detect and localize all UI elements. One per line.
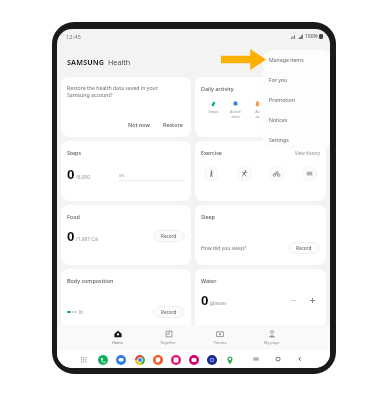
button[interactable]: Daily activity <box>195 77 326 137</box>
staticText: Water <box>201 277 217 284</box>
button[interactable]: Cycling <box>269 166 284 181</box>
staticText: View history <box>295 150 320 156</box>
staticText: Exercise <box>201 149 222 156</box>
staticText: Settings <box>269 136 289 143</box>
button[interactable]: Steps <box>61 141 191 201</box>
staticText: Active time <box>227 109 244 119</box>
button[interactable]: Messages <box>116 355 126 365</box>
button[interactable]: Notices <box>263 109 330 129</box>
button[interactable]: Chrome <box>134 354 145 365</box>
button[interactable]: Increase water <box>307 295 318 306</box>
button[interactable]: Phone <box>98 355 108 365</box>
button[interactable]: Back <box>296 355 304 363</box>
button[interactable]: Together <box>143 325 194 350</box>
staticText: glasses <box>210 300 227 307</box>
button[interactable]: Body composition <box>61 269 191 329</box>
staticText: Sleep <box>201 213 215 220</box>
button[interactable]: More exercises <box>302 166 317 181</box>
button[interactable]: Gallery <box>171 355 181 365</box>
button[interactable]: View history <box>295 150 320 156</box>
button[interactable]: Record <box>153 230 185 242</box>
staticText: Ac ca <box>249 109 266 119</box>
button[interactable]: Fitness <box>194 325 246 350</box>
button[interactable]: Apps <box>78 354 88 364</box>
staticText: 12:45 <box>66 33 81 41</box>
staticText: lb <box>79 309 84 315</box>
button[interactable]: Manage items <box>263 50 330 69</box>
button[interactable]: Sleep <box>195 205 326 265</box>
button[interactable]: Notes <box>153 355 163 365</box>
staticText: Manage items <box>269 56 304 63</box>
staticText: 100% <box>305 33 318 40</box>
staticText: How did you sleep? <box>201 245 247 252</box>
staticText: Restore <box>163 121 183 128</box>
staticText: 0% <box>119 173 125 178</box>
button[interactable]: Settings <box>263 129 330 149</box>
button[interactable]: Recents <box>252 355 260 363</box>
staticText: Promotion <box>269 96 295 103</box>
staticText: Notices <box>269 116 288 123</box>
staticText: Fitness <box>214 340 227 345</box>
staticText: Home <box>112 340 123 345</box>
button[interactable]: My page <box>246 325 298 350</box>
button[interactable]: Decrease water <box>288 295 299 306</box>
button[interactable]: Camera <box>189 355 199 365</box>
button[interactable]: Not now <box>126 120 152 129</box>
staticText: My page <box>264 340 280 345</box>
staticText: Samsung account? <box>67 91 113 98</box>
staticText: Health <box>108 57 131 67</box>
staticText: 0 <box>201 291 209 309</box>
button[interactable]: Record <box>288 242 320 254</box>
button[interactable]: Restore <box>161 120 185 129</box>
staticText: Record <box>161 309 177 315</box>
button[interactable]: Running <box>237 166 252 181</box>
button[interactable]: Restore the health data saved in your <box>61 77 191 137</box>
button[interactable]: Walking <box>204 166 219 181</box>
button[interactable]: Promotion <box>263 89 330 109</box>
button[interactable]: Exercise <box>195 141 326 201</box>
staticText: Together <box>160 340 177 345</box>
staticText: 0 <box>67 165 75 183</box>
staticText: Daily activity <box>201 85 234 92</box>
staticText: For you <box>269 76 288 83</box>
button[interactable]: Food <box>61 205 191 265</box>
staticText: /6,000 <box>76 174 91 181</box>
staticText: Restore the health data saved in your <box>67 84 158 91</box>
staticText: /1,987 Cal <box>76 236 99 243</box>
button[interactable]: For you <box>263 69 330 89</box>
staticText: Steps <box>205 109 222 114</box>
staticText: Not now <box>128 121 150 128</box>
staticText: Record <box>296 245 312 251</box>
button[interactable]: Samsung Internet <box>207 355 217 365</box>
staticText: SAMSUNG <box>67 57 105 67</box>
staticText: Food <box>67 213 80 220</box>
staticText: Record <box>161 233 177 239</box>
button[interactable]: Home <box>92 325 143 350</box>
staticText: Body composition <box>67 277 114 284</box>
staticText: 0 <box>67 227 75 245</box>
button[interactable]: Home <box>274 355 282 363</box>
button[interactable]: Record <box>153 306 185 318</box>
button[interactable]: Water <box>195 269 326 329</box>
button[interactable]: Maps <box>225 355 235 365</box>
staticText: Steps <box>67 149 82 156</box>
